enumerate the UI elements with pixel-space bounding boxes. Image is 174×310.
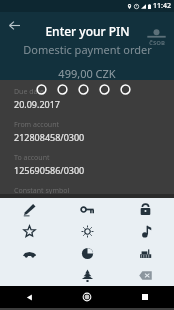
staticText: Domestic payment order xyxy=(23,42,152,57)
staticText: Constant symbol xyxy=(14,186,70,194)
staticText: 212808458/0300 xyxy=(14,131,85,143)
button[interactable]: Music note xyxy=(116,220,174,242)
button[interactable]: Recent apps xyxy=(116,286,174,308)
staticText: 125690586/0300 xyxy=(14,164,85,176)
button[interactable]: Back xyxy=(3,14,25,36)
button[interactable]: Boat xyxy=(116,242,174,264)
button[interactable]: Tree xyxy=(58,264,116,286)
staticText: Enter your PIN xyxy=(45,23,130,39)
button[interactable]: Home xyxy=(58,286,116,308)
button[interactable]: Star xyxy=(0,220,58,242)
staticText: 20.09.2017 xyxy=(14,98,61,110)
button[interactable]: Pencil xyxy=(0,198,58,220)
button[interactable]: Sun xyxy=(58,220,116,242)
staticText: From account xyxy=(14,120,60,130)
staticText: 11:42 xyxy=(153,1,171,11)
staticText: To account xyxy=(14,153,50,163)
button[interactable]: Back xyxy=(0,286,58,308)
button[interactable]: Car xyxy=(0,242,58,264)
staticText: Due date xyxy=(14,87,44,97)
button[interactable]: Backspace xyxy=(116,264,174,286)
staticText: ČSOB xyxy=(149,39,165,47)
button[interactable]: Lock xyxy=(116,198,174,220)
button[interactable]: Ball xyxy=(58,242,116,264)
button[interactable]: Key xyxy=(58,198,116,220)
staticText: 499,00 CZK xyxy=(58,66,116,80)
